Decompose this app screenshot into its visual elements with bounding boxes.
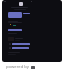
button[interactable]: App logo	[19, 2, 23, 6]
button[interactable]	[8, 12, 22, 18]
staticText: powered by	[6, 64, 29, 70]
